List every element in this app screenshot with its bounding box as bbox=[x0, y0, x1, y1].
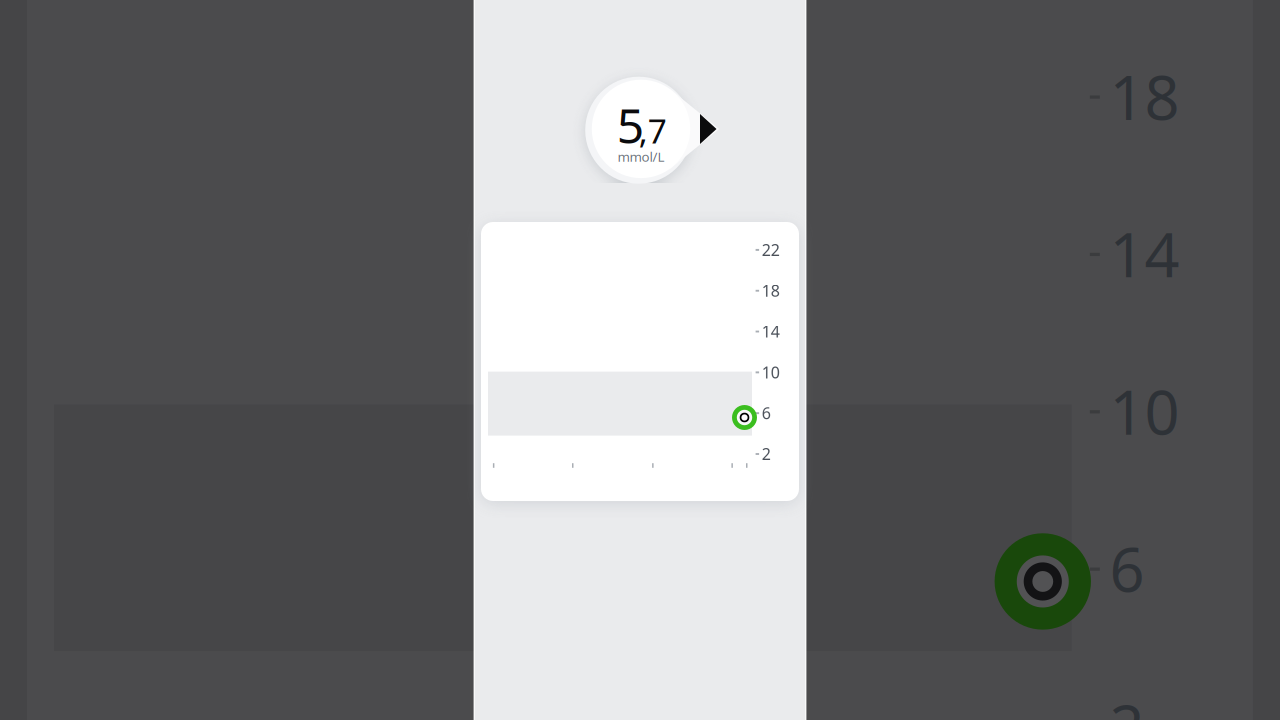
staticText: ,7 bbox=[639, 109, 667, 153]
staticText: 5 bbox=[617, 93, 644, 157]
staticText: 14 bbox=[762, 321, 780, 342]
staticText: 6 bbox=[1109, 528, 1144, 609]
staticText: 18 bbox=[1109, 55, 1179, 137]
staticText: 18 bbox=[762, 280, 780, 301]
staticText: 22 bbox=[762, 239, 780, 260]
staticText: 6 bbox=[762, 402, 771, 424]
staticText: 2 bbox=[762, 443, 771, 464]
staticText: 2 bbox=[1109, 685, 1144, 720]
staticText: 10 bbox=[1109, 370, 1179, 452]
staticText: 10 bbox=[762, 362, 780, 383]
button[interactable]: 5 bbox=[584, 58, 744, 190]
staticText: 14 bbox=[1109, 213, 1179, 294]
staticText: mmol/L bbox=[617, 148, 664, 165]
